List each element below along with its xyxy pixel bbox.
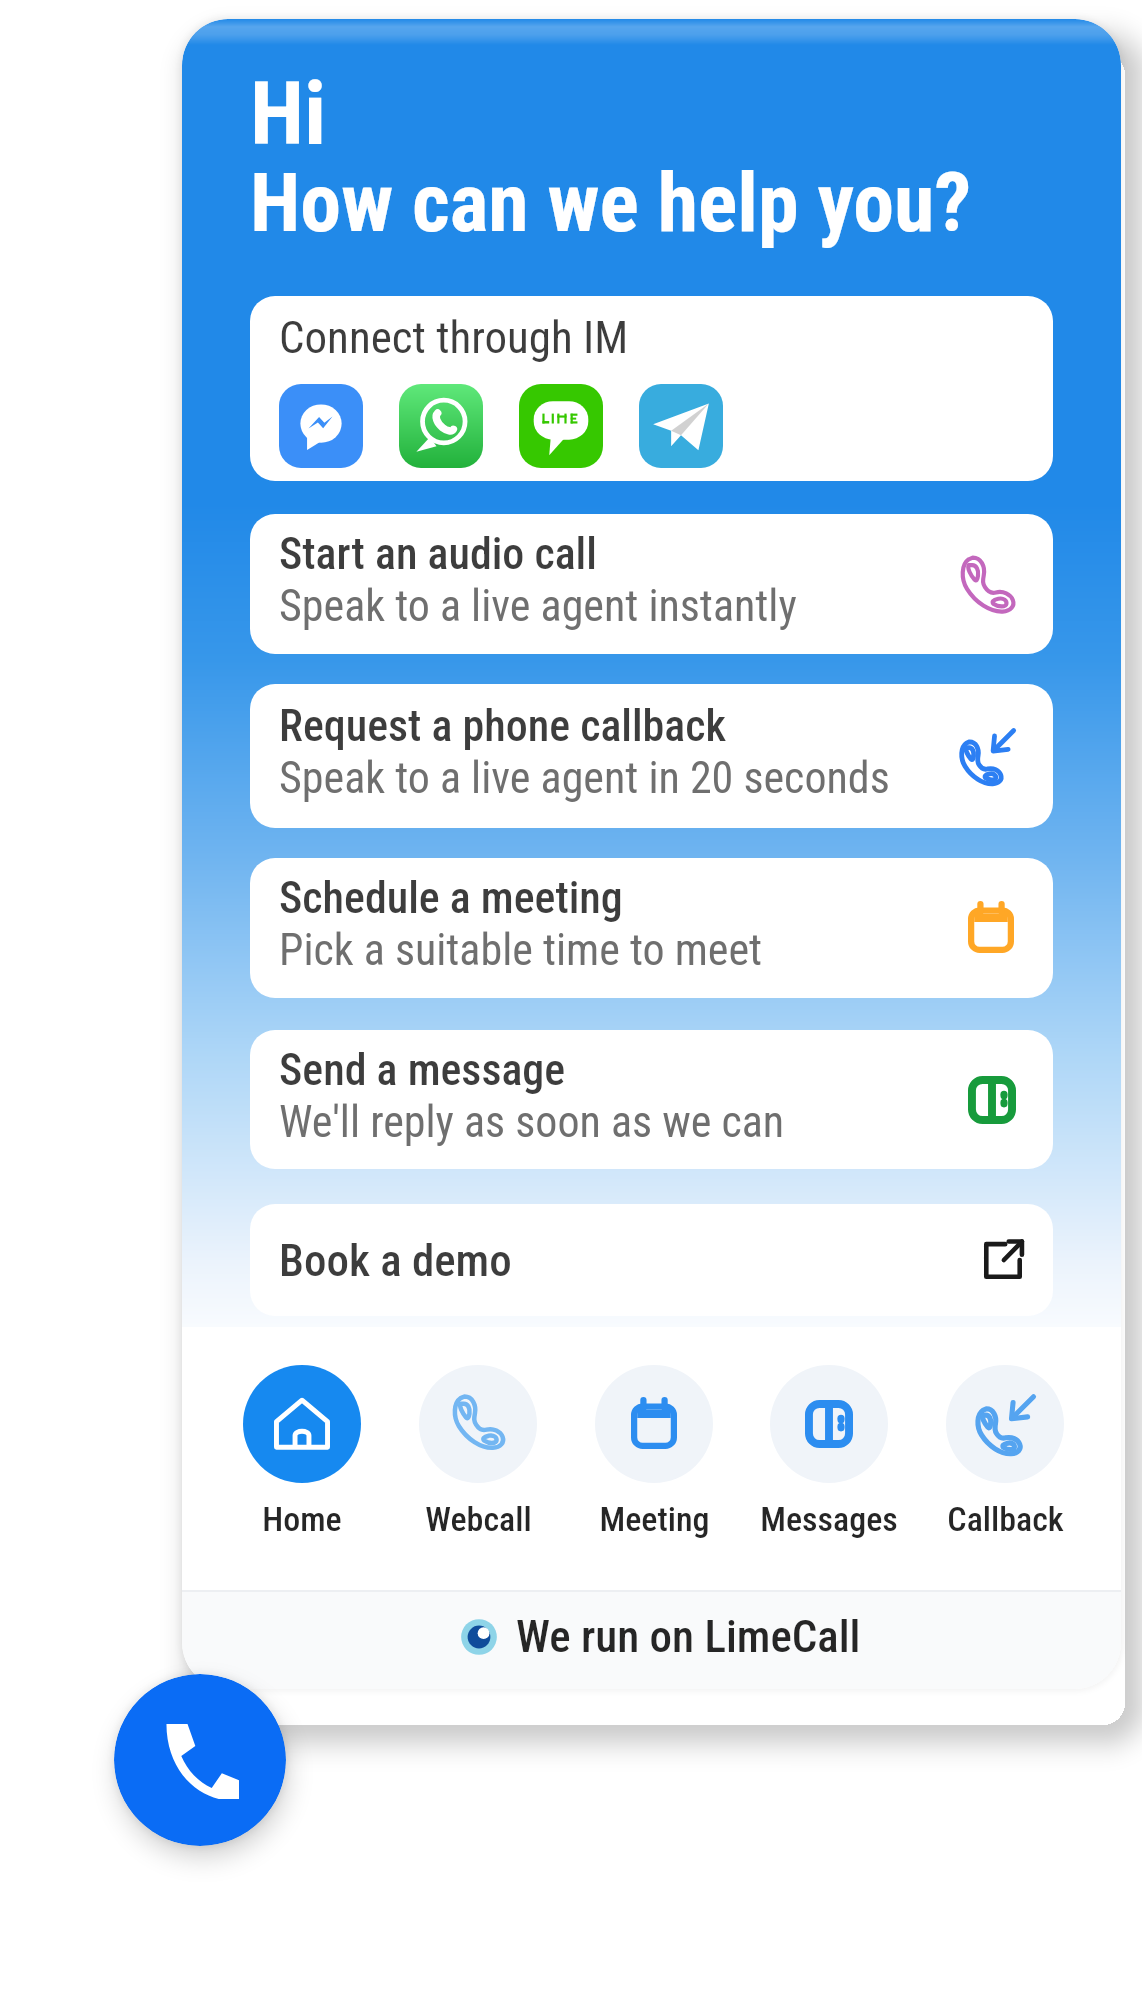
staticText: Pick a suitable time to meet — [279, 924, 763, 976]
button[interactable]: Book a demo — [250, 1204, 1053, 1316]
button[interactable]: Start an audio call — [250, 514, 1053, 654]
staticText: How can we help you? — [250, 155, 972, 251]
button[interactable]: Messages — [756, 1327, 902, 1539]
staticText: Meeting — [599, 1499, 710, 1539]
button[interactable] — [639, 384, 723, 468]
button[interactable]: Request a phone callback — [250, 684, 1053, 828]
staticText: Webcall — [425, 1499, 532, 1539]
button[interactable]: Send a message — [250, 1030, 1053, 1169]
button[interactable]: Webcall — [405, 1327, 551, 1539]
staticText: Book a demo — [279, 1234, 512, 1287]
staticText: Messages — [760, 1499, 898, 1539]
staticText: Schedule a meeting — [279, 872, 623, 924]
button[interactable]: Meeting — [581, 1327, 727, 1539]
staticText: We'll reply as soon as we can — [279, 1096, 785, 1148]
button[interactable]: Home — [229, 1327, 375, 1539]
staticText: Connect through IM — [279, 311, 629, 364]
staticText: Start an audio call — [279, 528, 597, 580]
staticText: Hi — [250, 62, 327, 165]
button[interactable] — [399, 384, 483, 468]
staticText: Callback — [947, 1499, 1064, 1539]
staticText: Home — [262, 1499, 342, 1539]
staticText: Speak to a live agent instantly — [279, 580, 797, 632]
button[interactable]: Schedule a meeting — [250, 858, 1053, 998]
button[interactable]: Connect through IM — [250, 296, 1053, 481]
button[interactable] — [279, 384, 363, 468]
button[interactable] — [519, 384, 603, 468]
staticText: Send a message — [279, 1044, 566, 1096]
button[interactable]: Callback — [932, 1327, 1078, 1539]
staticText: Speak to a live agent in 20 seconds — [279, 752, 890, 804]
staticText: Request a phone callback — [279, 700, 726, 752]
staticText: We run on LimeCall — [516, 1610, 861, 1663]
button[interactable]: Call — [114, 1674, 286, 1846]
